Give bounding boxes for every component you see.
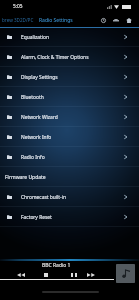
staticText: Alarm, Clock & Timer Options (21, 54, 123, 61)
button[interactable]: Speaker (110, 14, 122, 26)
button[interactable]: Alarm, Clock & Timer Options (0, 47, 139, 67)
staticText: Network Info (21, 134, 123, 141)
button[interactable]: Home (123, 14, 135, 26)
button[interactable]: Equalization (0, 27, 139, 47)
staticText: Radio Info (21, 154, 123, 161)
button[interactable]: Fast forward (83, 269, 99, 281)
staticText: Display Settings (21, 74, 123, 81)
staticText: Radio Settings (39, 17, 73, 24)
staticText: brew 3D2D/PC (2, 17, 34, 23)
button[interactable]: Pause (66, 269, 81, 281)
button[interactable]: History (97, 14, 109, 26)
button[interactable]: Radio Settings (37, 13, 75, 27)
button[interactable]: Network Wizard (0, 107, 139, 127)
staticText: Chromecast built-in (21, 194, 123, 201)
button[interactable]: Stop (38, 269, 53, 281)
button[interactable]: Now playing artwork (116, 264, 135, 283)
staticText: Firmware Update (5, 174, 46, 181)
staticText: Factory Reset (21, 214, 123, 221)
button[interactable]: Rewind (13, 269, 29, 281)
button[interactable]: Bluetooth (0, 87, 139, 107)
staticText: Network Wizard (21, 114, 123, 121)
button[interactable]: Chromecast built-in (0, 187, 139, 207)
button[interactable]: Display Settings (0, 67, 139, 87)
button[interactable]: Network Info (0, 127, 139, 147)
staticText: 5:05 (13, 3, 23, 10)
staticText: BBC Radio 1 (42, 262, 71, 269)
staticText: Bluetooth (21, 94, 123, 101)
button[interactable]: Radio Info (0, 147, 139, 167)
button[interactable]: brew 3D2D/PC (0, 13, 36, 27)
button[interactable]: Factory Reset (0, 207, 139, 227)
staticText: Equalization (21, 34, 123, 41)
